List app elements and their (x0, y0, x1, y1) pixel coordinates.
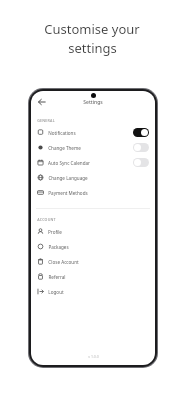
staticText: Customise your (44, 20, 140, 38)
button[interactable]: Auto Sync Calendar (31, 155, 155, 170)
staticText: Packages (48, 244, 69, 250)
staticText: Payment Methods (48, 190, 88, 196)
button[interactable]: Toggle on (133, 128, 149, 137)
staticText: v 1.0.0 (88, 354, 99, 359)
staticText: Logout (48, 289, 64, 295)
staticText: Close Account (48, 259, 79, 265)
button[interactable]: Close Account (31, 254, 155, 269)
button[interactable]: Change Theme (31, 140, 155, 155)
button[interactable]: Back (35, 95, 49, 109)
button[interactable]: Logout (31, 284, 155, 299)
button[interactable]: Toggle off (133, 158, 149, 167)
button[interactable]: Change Language (31, 170, 155, 185)
staticText: Auto Sync Calendar (48, 160, 90, 166)
staticText: settings (68, 39, 117, 57)
button[interactable]: Toggle off (133, 143, 149, 152)
staticText: GENERAL (37, 118, 55, 123)
button[interactable]: Referral (31, 269, 155, 284)
staticText: Referral (48, 274, 66, 280)
staticText: Change Language (48, 175, 88, 181)
staticText: Notifications (48, 130, 76, 136)
staticText: Profile (48, 229, 62, 235)
button[interactable]: Notifications (31, 125, 155, 140)
button[interactable]: Payment Methods (31, 185, 155, 200)
button[interactable]: Packages (31, 239, 155, 254)
button[interactable]: Profile (31, 224, 155, 239)
staticText: Change Theme (48, 145, 81, 151)
staticText: Settings (83, 99, 103, 106)
staticText: ACCOUNT (37, 217, 56, 222)
